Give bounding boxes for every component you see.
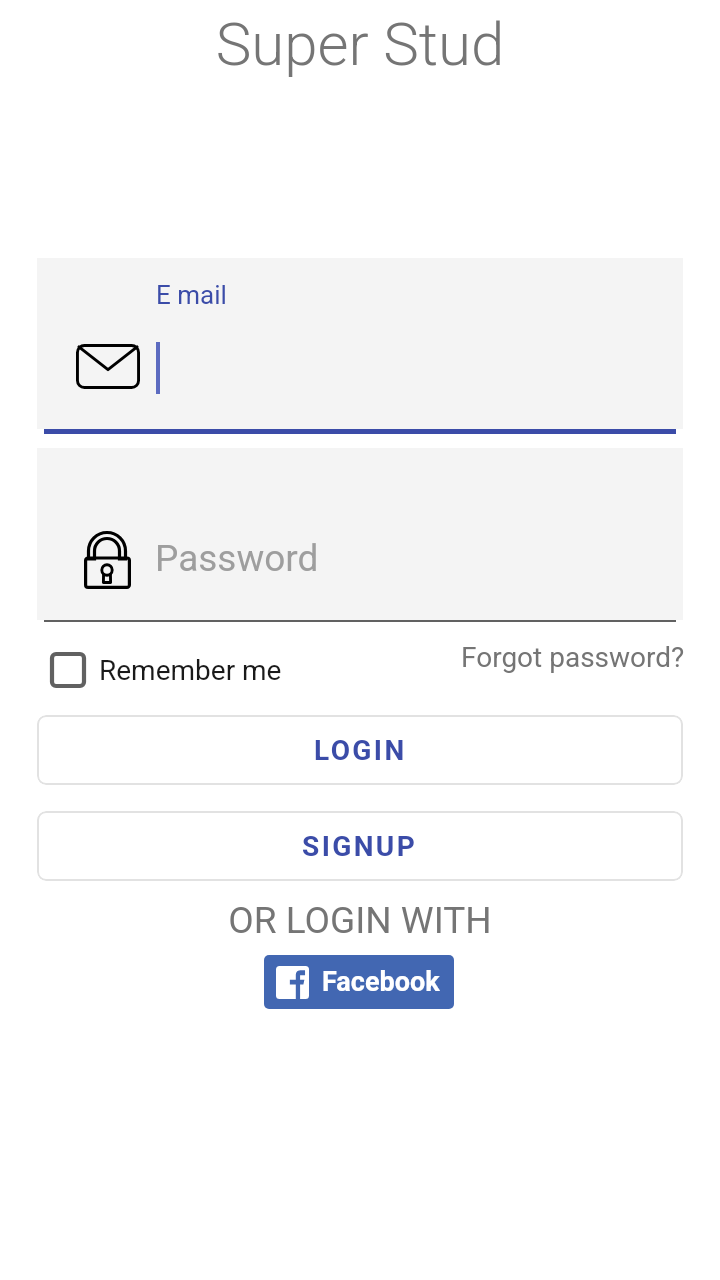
staticText: Password	[155, 537, 319, 580]
button[interactable]: Remember me	[46, 648, 282, 692]
other: Password	[84, 525, 132, 589]
other: Email	[76, 344, 140, 389]
button[interactable]: Password	[37, 448, 683, 620]
staticText: Forgot password?	[461, 641, 685, 674]
staticText: Remember me	[99, 654, 282, 687]
button[interactable]: LOGIN	[37, 715, 683, 785]
staticText: LOGIN	[314, 734, 407, 767]
button[interactable]: E mail	[37, 258, 683, 429]
staticText: SIGNUP	[302, 830, 418, 863]
staticText: E mail	[156, 280, 227, 310]
button[interactable]: SIGNUP	[37, 811, 683, 881]
button[interactable]: Facebook	[264, 955, 454, 1009]
staticText: Facebook	[322, 966, 440, 998]
staticText: OR LOGIN WITH	[0, 899, 720, 942]
staticText: Super Stud	[0, 9, 720, 79]
button[interactable]: Forgot password?	[453, 633, 693, 682]
